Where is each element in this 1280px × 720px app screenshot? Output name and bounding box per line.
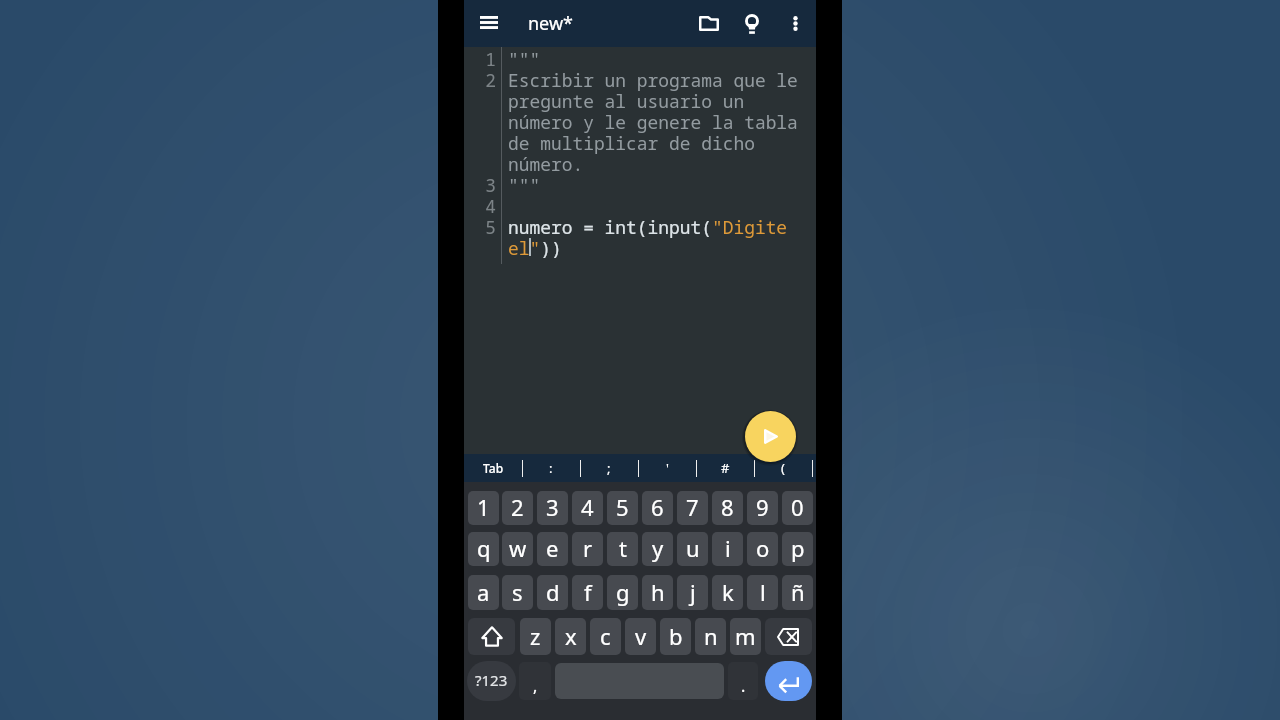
staticText: g (616, 577, 630, 607)
button[interactable]: s (502, 575, 533, 610)
staticText: ?123 (475, 670, 508, 690)
button[interactable]: Backspace (765, 618, 812, 655)
button[interactable]: ñ (782, 575, 813, 610)
button[interactable]: . (728, 662, 758, 700)
staticText: 2 (474, 68, 496, 92)
staticText: t (619, 533, 627, 563)
button[interactable]: : (522, 454, 580, 482)
button[interactable]: 6 (642, 491, 673, 525)
button[interactable]: k (712, 575, 743, 610)
staticText: e (546, 533, 559, 563)
button[interactable]: Tab (464, 454, 522, 482)
button[interactable]: , (519, 662, 551, 700)
button[interactable]: g (607, 575, 638, 610)
button[interactable]: Menu (469, 0, 509, 47)
staticText: 8 (721, 492, 734, 522)
staticText: j (690, 577, 696, 607)
staticText: o (756, 533, 770, 563)
button[interactable]: ' (638, 454, 696, 482)
staticText: """ (508, 173, 541, 197)
button[interactable]: # (696, 454, 754, 482)
button[interactable]: Run (745, 411, 796, 462)
button[interactable]: More options (773, 0, 817, 47)
button[interactable]: b (660, 618, 691, 655)
button[interactable]: 4 (572, 491, 603, 525)
staticText: 6 (651, 492, 664, 522)
staticText: : (549, 459, 553, 477)
staticText: ; (607, 459, 611, 477)
staticText: p (791, 533, 805, 563)
button[interactable]: 7 (677, 491, 708, 525)
staticText: """ (508, 47, 541, 71)
button[interactable]: 2 (502, 491, 533, 525)
staticText: 5 (474, 215, 496, 239)
button[interactable]: 9 (747, 491, 778, 525)
button[interactable]: r (572, 532, 603, 566)
button[interactable]: Enter (765, 661, 812, 701)
staticText: # (721, 459, 730, 477)
staticText: Tab (483, 460, 504, 476)
button[interactable]: m (730, 618, 761, 655)
button[interactable]: c (590, 618, 621, 655)
staticText: 3 (546, 492, 559, 522)
button[interactable]: 0 (782, 491, 813, 525)
button[interactable]: 3 (537, 491, 568, 525)
staticText: v (635, 621, 647, 651)
staticText: 9 (756, 492, 769, 522)
staticText: . (741, 675, 746, 697)
staticText: s (512, 577, 523, 607)
staticText: 1 (477, 492, 490, 522)
button[interactable]: i (712, 532, 743, 566)
staticText: h (651, 577, 665, 607)
button[interactable]: f (572, 575, 603, 610)
staticText: f (584, 577, 592, 607)
button[interactable]: 5 (607, 491, 638, 525)
button[interactable]: v (625, 618, 656, 655)
button[interactable]: p (782, 532, 813, 566)
staticText: n (704, 621, 718, 651)
button[interactable]: a (468, 575, 499, 610)
staticText: ñ (791, 577, 805, 607)
staticText: Escribir un programa que le pregunte al … (508, 68, 808, 177)
button[interactable]: z (520, 618, 551, 655)
staticText: 5 (616, 492, 629, 522)
button[interactable]: l (747, 575, 778, 610)
staticText: 1 (474, 47, 496, 71)
button[interactable]: Open file (687, 0, 731, 47)
button[interactable]: 1 (468, 491, 499, 525)
button[interactable]: h (642, 575, 673, 610)
button[interactable]: x (555, 618, 586, 655)
staticText: q (477, 533, 491, 563)
button[interactable]: d (537, 575, 568, 610)
staticText: 4 (581, 492, 594, 522)
staticText: 3 (474, 173, 496, 197)
staticText: r (583, 533, 593, 563)
button[interactable]: t (607, 532, 638, 566)
button[interactable]: o (747, 532, 778, 566)
button[interactable]: Hints (730, 0, 774, 47)
button[interactable]: w (502, 532, 533, 566)
button[interactable]: e (537, 532, 568, 566)
staticText: , (533, 675, 538, 697)
staticText: w (509, 533, 527, 563)
staticText: ( (781, 459, 785, 477)
staticText: 0 (791, 492, 804, 522)
button[interactable]: 8 (712, 491, 743, 525)
staticText: 4 (474, 194, 496, 218)
staticText: i (725, 533, 731, 563)
staticText: 2 (511, 492, 524, 522)
button[interactable]: n (695, 618, 726, 655)
button[interactable]: ?123 (467, 661, 516, 701)
button[interactable]: ( (754, 454, 812, 482)
button[interactable]: j (677, 575, 708, 610)
staticText: x (565, 621, 577, 651)
staticText: numero = int(input("Digite el")) (508, 215, 808, 261)
button[interactable]: y (642, 532, 673, 566)
staticText: a (477, 577, 490, 607)
button[interactable]: Shift (468, 618, 515, 655)
button[interactable]: u (677, 532, 708, 566)
staticText: d (546, 577, 560, 607)
button[interactable]: q (468, 532, 499, 566)
button[interactable]: ; (580, 454, 638, 482)
